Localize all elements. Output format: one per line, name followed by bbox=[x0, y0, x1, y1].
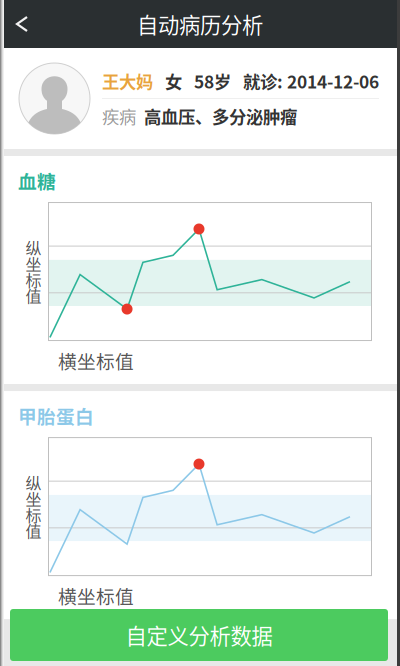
staticText: 横坐标值 bbox=[58, 582, 134, 609]
button[interactable]: 自定义分析数据 bbox=[10, 609, 388, 661]
staticText: 王大妈 bbox=[102, 68, 153, 94]
staticText: 纵 bbox=[25, 236, 41, 259]
staticText: 横坐标值 bbox=[58, 347, 134, 374]
staticText: 甲胎蛋白 bbox=[18, 402, 94, 429]
staticText: 自动病历分析 bbox=[137, 9, 263, 39]
button[interactable]: Back bbox=[0, 0, 46, 48]
staticText: 自定义分析数据 bbox=[125, 620, 272, 650]
staticText: 血糖 bbox=[18, 167, 56, 194]
staticText: 就诊: 2014-12-06 bbox=[231, 68, 379, 94]
staticText: 坐 bbox=[25, 487, 41, 510]
staticText: 值 bbox=[25, 519, 41, 542]
staticText: 女 bbox=[153, 68, 182, 94]
staticText: 高血压、多分泌肿瘤 bbox=[136, 103, 297, 129]
staticText: 标 bbox=[25, 268, 41, 291]
staticText: 坐 bbox=[25, 252, 41, 275]
staticText: 58岁 bbox=[182, 68, 231, 94]
staticText: 标 bbox=[25, 503, 41, 526]
staticText: 值 bbox=[25, 284, 41, 307]
staticText: 疾病 bbox=[102, 103, 136, 129]
staticText: 纵 bbox=[25, 471, 41, 494]
